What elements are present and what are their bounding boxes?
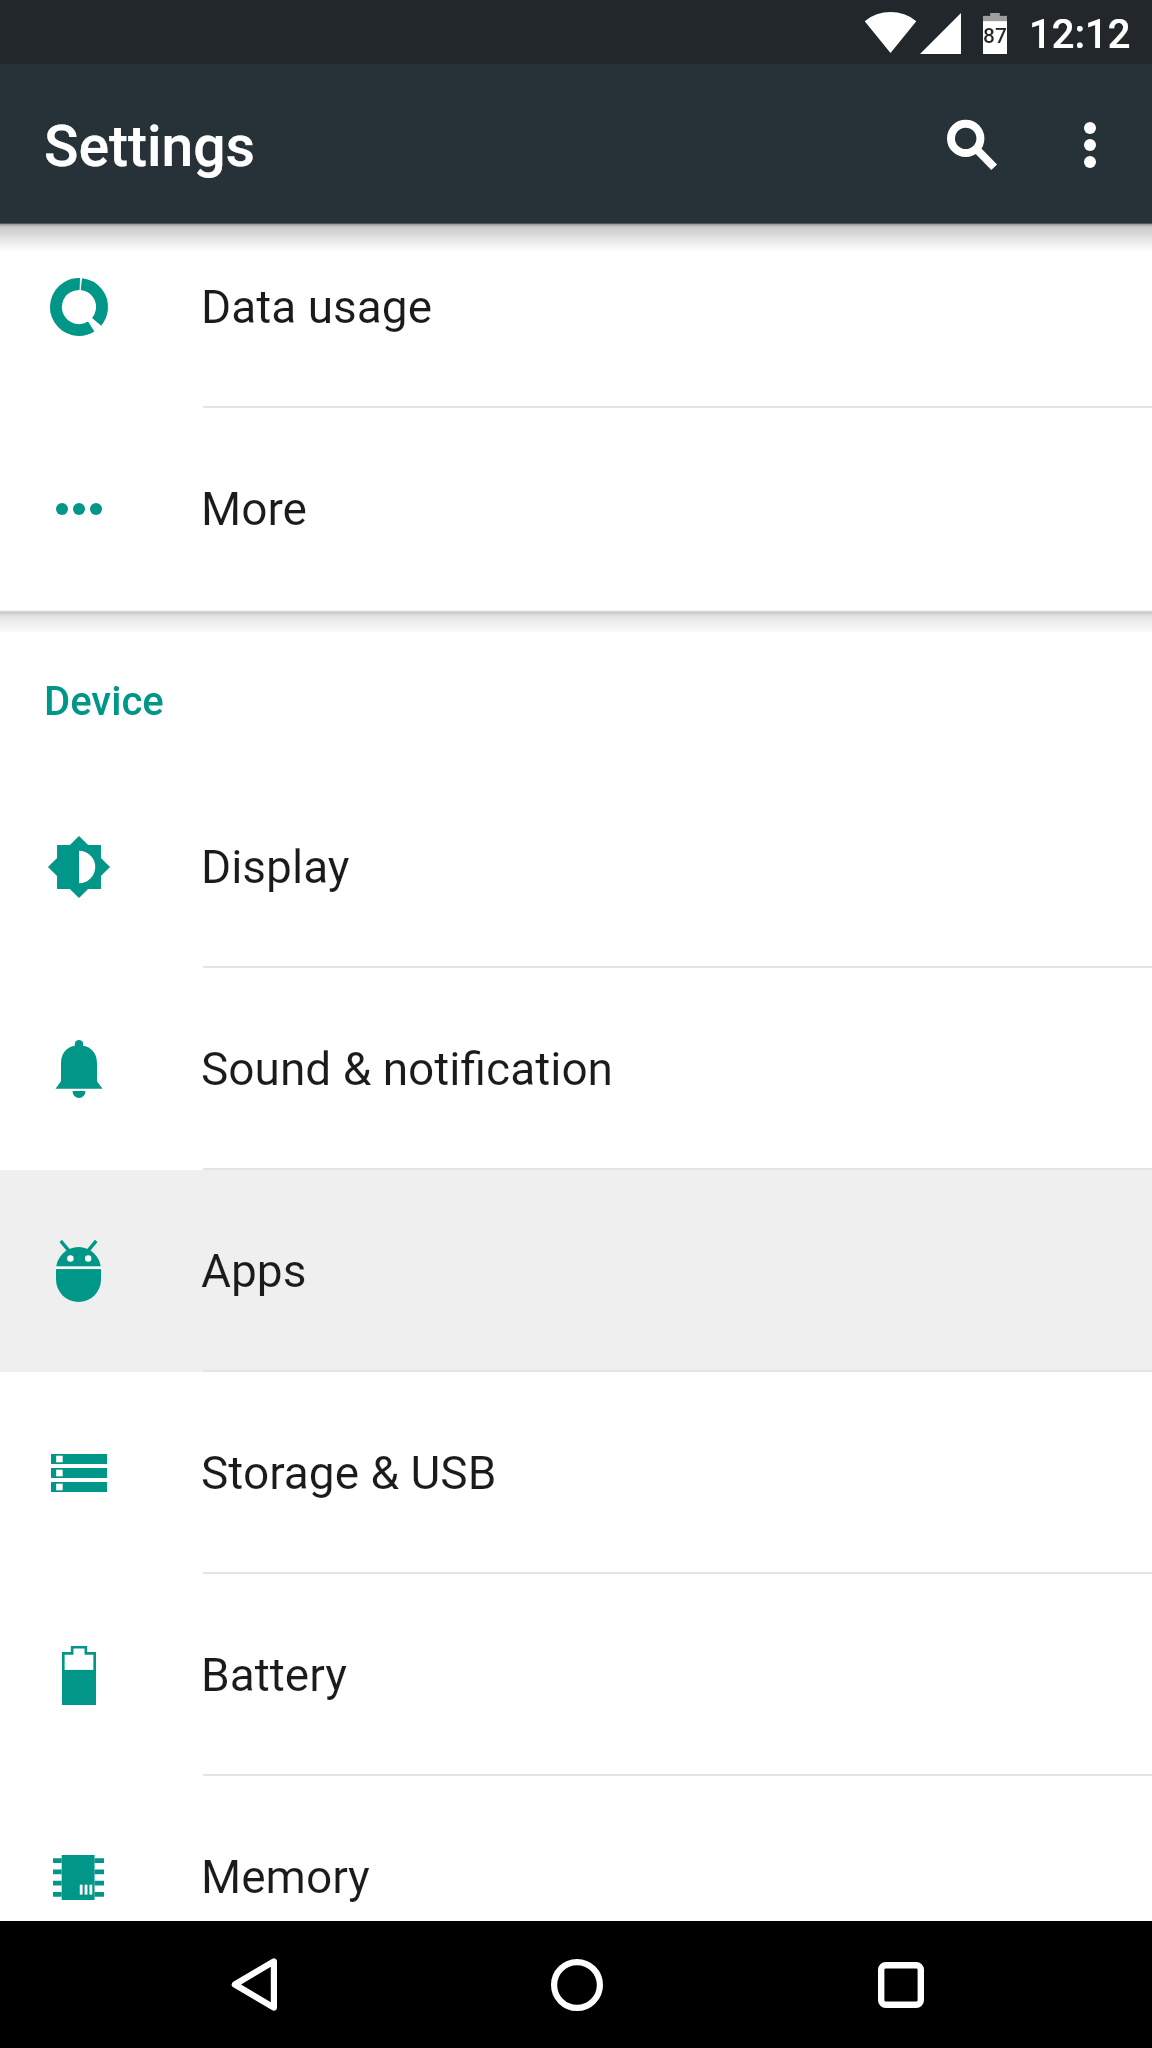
button[interactable]: Recents: [837, 1921, 964, 2048]
staticText: Data usage: [201, 280, 433, 334]
staticText: Battery: [201, 1648, 347, 1702]
button[interactable]: Search: [922, 64, 1022, 223]
button[interactable]: Home: [513, 1921, 640, 2048]
staticText: Display: [201, 840, 350, 894]
button[interactable]: Apps: [0, 1170, 1152, 1372]
button[interactable]: Storage & USB: [0, 1372, 1152, 1574]
staticText: Apps: [201, 1244, 307, 1298]
staticText: Device: [44, 678, 164, 725]
button[interactable]: Display: [0, 766, 1152, 968]
button[interactable]: Memory: [0, 1776, 1152, 1921]
button[interactable]: More options: [1038, 64, 1143, 223]
button[interactable]: Data usage: [0, 223, 1152, 408]
staticText: More: [201, 482, 307, 536]
button[interactable]: Back: [190, 1921, 317, 2048]
button[interactable]: More: [0, 408, 1152, 610]
staticText: 87: [983, 24, 1007, 49]
staticText: Storage & USB: [201, 1446, 497, 1500]
staticText: Settings: [44, 113, 256, 180]
button[interactable]: Sound & notification: [0, 968, 1152, 1170]
staticText: 12:12: [1029, 11, 1131, 58]
button[interactable]: Battery: [0, 1574, 1152, 1776]
staticText: Memory: [201, 1850, 370, 1904]
staticText: Sound & notification: [201, 1042, 614, 1096]
